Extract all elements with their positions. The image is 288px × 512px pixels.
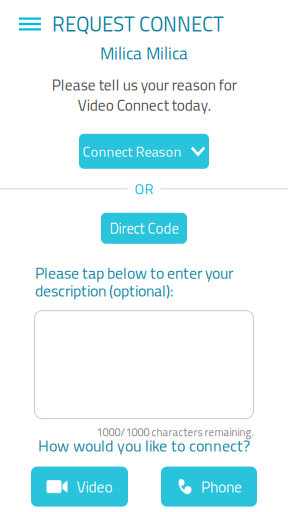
staticText: How would you like to connect?: [38, 433, 250, 458]
button[interactable]: Direct Code: [101, 213, 187, 244]
staticText: Video: [76, 475, 112, 498]
staticText: Please tell us your reason for Video Con…: [51, 73, 236, 117]
staticText: OR: [134, 178, 153, 200]
staticText: Connect Reason: [82, 140, 181, 162]
button[interactable]: Menu: [0, 11, 52, 36]
staticText: Please tap below to enter your descripti…: [35, 261, 233, 303]
button[interactable]: Video: [31, 467, 128, 507]
staticText: Phone: [201, 475, 242, 498]
staticText: Milica Milica: [100, 40, 188, 66]
button[interactable]: Phone: [161, 467, 257, 507]
staticText: REQUEST CONNECT: [52, 8, 224, 39]
button[interactable]: Description: [34, 311, 253, 419]
button[interactable]: Connect Reason: [79, 134, 209, 169]
staticText: 1000/1000 characters remaining.: [96, 424, 253, 440]
staticText: Direct Code: [109, 217, 178, 239]
